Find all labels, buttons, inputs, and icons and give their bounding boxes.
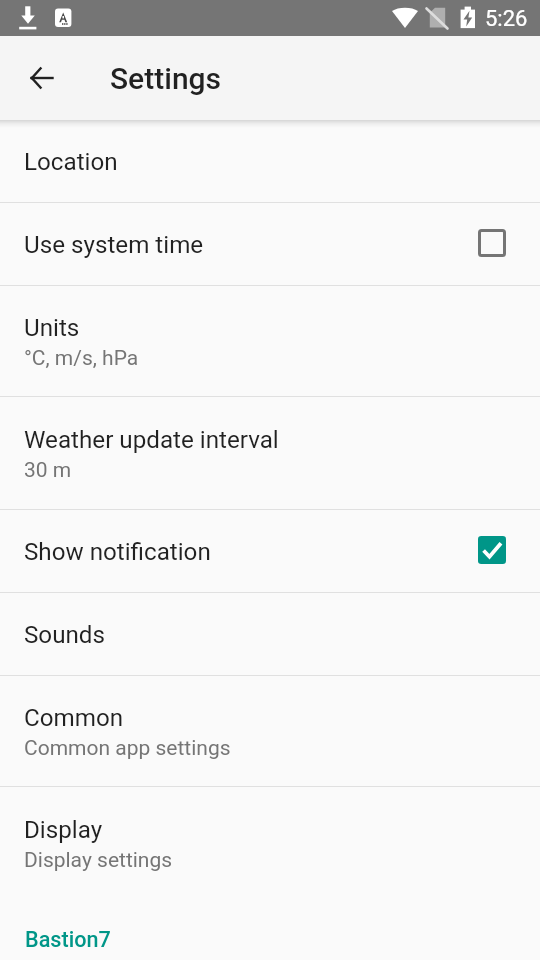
button[interactable]: Use system time xyxy=(0,203,540,285)
button[interactable]: Location xyxy=(0,120,540,202)
staticText: Display xyxy=(24,816,103,844)
staticText: 30 m xyxy=(24,458,72,483)
button[interactable]: Units xyxy=(0,286,540,396)
staticText: Settings xyxy=(110,61,222,96)
staticText: Common app settings xyxy=(24,736,231,761)
staticText: °C, m/s, hPa xyxy=(24,346,139,371)
staticText: Use system time xyxy=(24,231,204,259)
staticText: Display settings xyxy=(24,848,173,873)
button[interactable]: Checked xyxy=(478,536,506,564)
staticText: Units xyxy=(24,314,80,342)
button[interactable]: Sounds xyxy=(0,593,540,675)
staticText: Bastion7 xyxy=(25,927,111,952)
staticText: 5:26 xyxy=(485,6,528,32)
staticText: Weather update interval xyxy=(24,426,279,454)
button[interactable]: Unchecked xyxy=(478,229,506,257)
staticText: Sounds xyxy=(24,621,105,649)
staticText: Common xyxy=(24,704,124,732)
staticText: Location xyxy=(24,148,118,176)
button[interactable]: Back xyxy=(18,54,66,102)
button[interactable]: Display xyxy=(0,787,540,899)
staticText: Show notification xyxy=(24,538,211,566)
button[interactable]: Weather update interval xyxy=(0,397,540,509)
button[interactable]: Common xyxy=(0,676,540,786)
button[interactable]: Show notification xyxy=(0,510,540,592)
button[interactable]: Bastion7 xyxy=(0,899,540,960)
